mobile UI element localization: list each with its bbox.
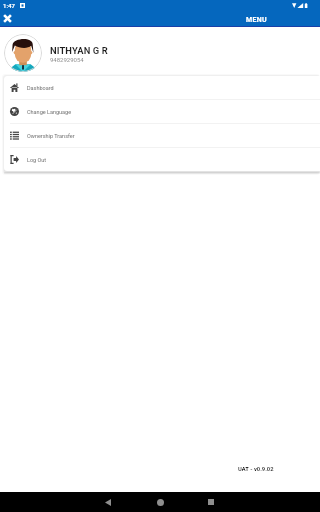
button[interactable]: Recents	[201, 492, 221, 512]
button[interactable]: Home	[150, 492, 170, 512]
button[interactable]: Dashboard	[4, 76, 320, 99]
staticText: MENU	[246, 16, 267, 24]
staticText: 1:47	[3, 2, 15, 9]
staticText: NITHYAN G R	[50, 45, 108, 56]
button[interactable]: Ownership Transfer	[4, 124, 320, 147]
staticText: Change Language	[27, 109, 72, 115]
button[interactable]: Close drawer	[0, 11, 15, 26]
staticText: Log Out	[27, 157, 47, 163]
staticText: Ownership Transfer	[27, 133, 75, 139]
button[interactable]: Back	[98, 492, 118, 512]
button[interactable]: Change Language	[4, 100, 320, 123]
staticText: UAT - v0.9.02	[238, 466, 274, 473]
button[interactable]: Log Out	[4, 148, 320, 171]
staticText: Dashboard	[27, 85, 54, 91]
staticText: 9482929054	[50, 56, 84, 63]
